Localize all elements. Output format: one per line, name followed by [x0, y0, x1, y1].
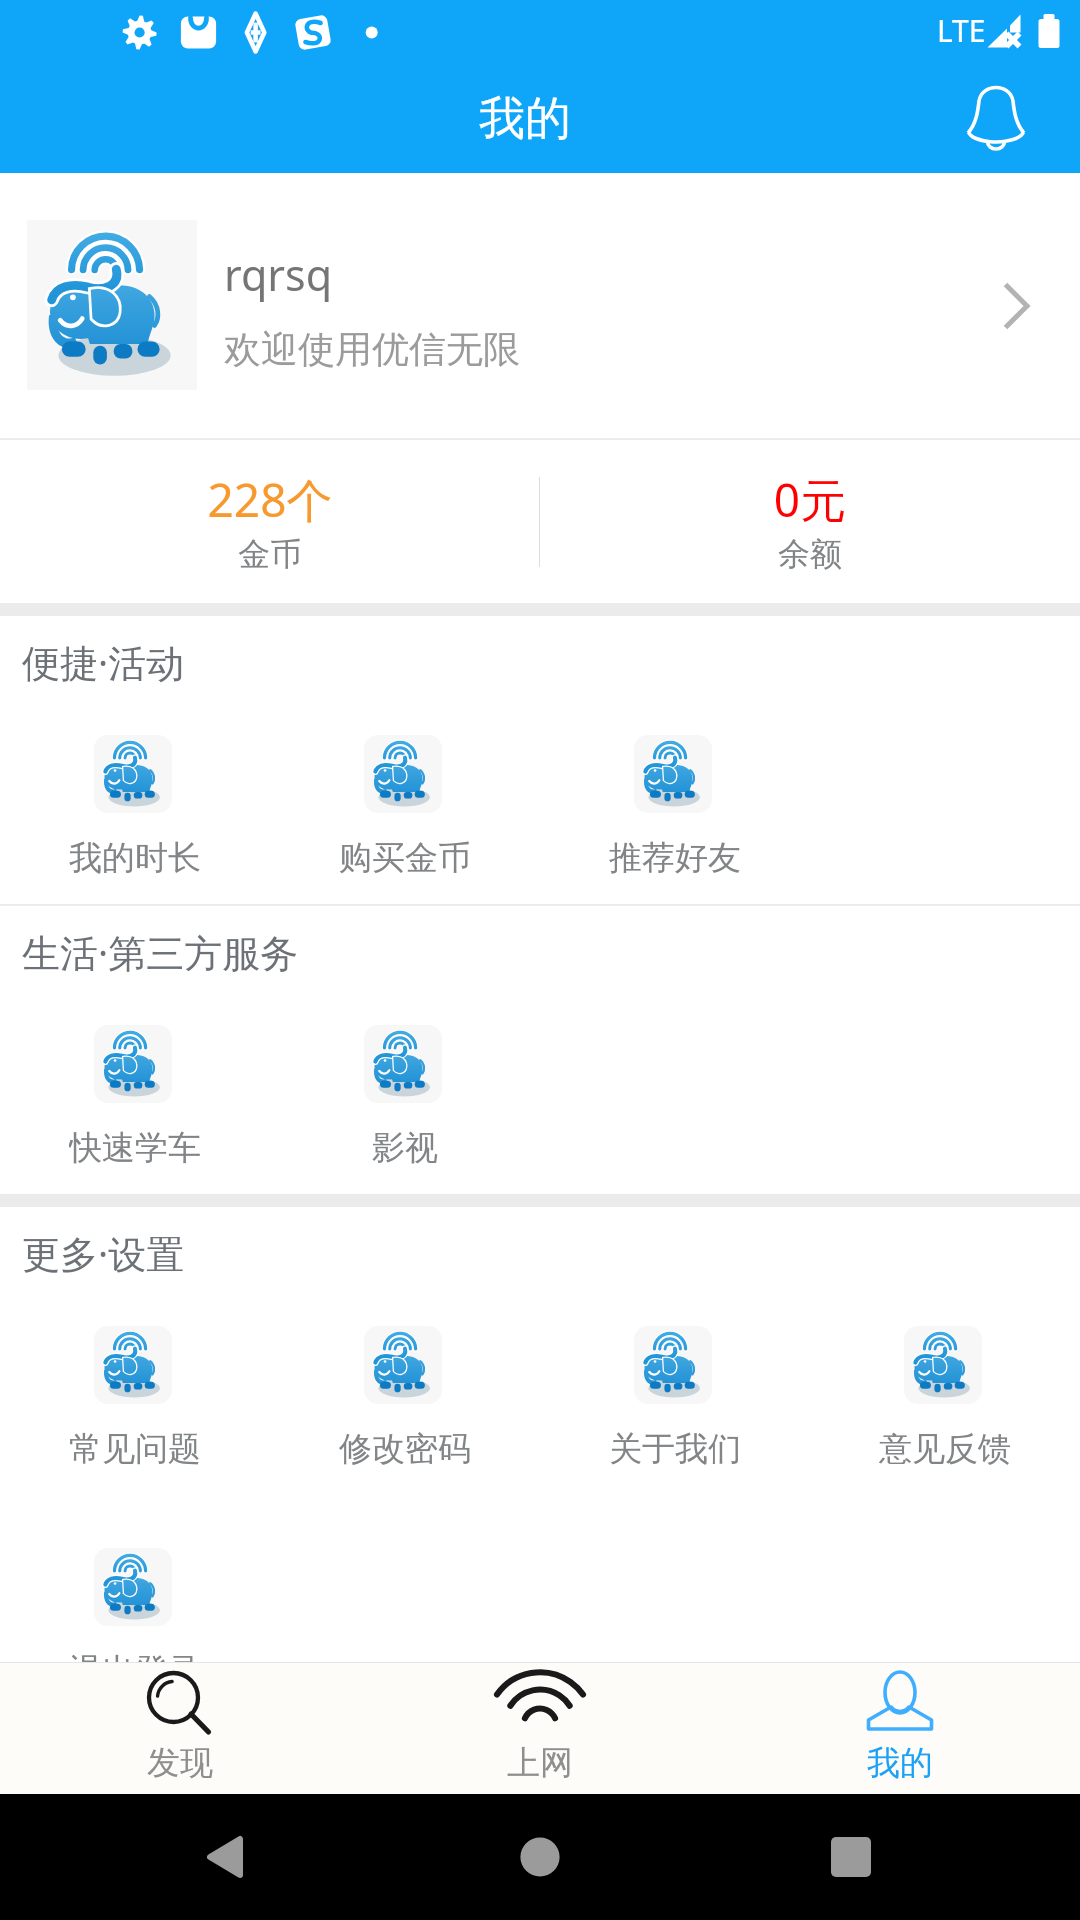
- staticText: 快速学车: [69, 1127, 201, 1166]
- button[interactable]: 快速学车: [0, 1025, 270, 1166]
- staticText: 退出登录: [69, 1650, 201, 1689]
- button[interactable]: 购买金币: [270, 735, 540, 876]
- staticText: 上网: [507, 1742, 573, 1784]
- staticText: 余额: [540, 534, 1080, 574]
- button[interactable]: Recent apps: [791, 1794, 911, 1920]
- staticText: 影视: [372, 1127, 438, 1166]
- button[interactable]: 退出登录: [0, 1548, 270, 1689]
- button[interactable]: 常见问题: [0, 1326, 270, 1467]
- button[interactable]: Back: [165, 1794, 285, 1920]
- staticText: 购买金币: [339, 837, 471, 876]
- staticText: 我的: [867, 1742, 933, 1784]
- staticText: 便捷·活动: [22, 636, 185, 688]
- staticText: 意见反馈: [879, 1428, 1011, 1467]
- staticText: rqrsq: [224, 245, 333, 304]
- staticText: 发现: [147, 1742, 213, 1784]
- button[interactable]: rqrsq: [0, 173, 1080, 438]
- button[interactable]: 我的时长: [0, 735, 270, 876]
- button[interactable]: 意见反馈: [810, 1326, 1080, 1467]
- staticText: 欢迎使用优信无限: [224, 326, 520, 373]
- button[interactable]: 228个: [0, 440, 540, 603]
- button[interactable]: 0元: [540, 440, 1080, 603]
- staticText: 金币: [0, 534, 540, 574]
- button[interactable]: Home: [480, 1794, 600, 1920]
- staticText: 推荐好友: [609, 837, 741, 876]
- button[interactable]: 关于我们: [540, 1326, 810, 1467]
- staticText: 生活·第三方服务: [22, 926, 299, 978]
- staticText: 228个: [0, 468, 540, 531]
- button[interactable]: 影视: [270, 1025, 540, 1166]
- button[interactable]: Notifications: [941, 57, 1051, 167]
- staticText: 我的时长: [69, 837, 201, 876]
- button[interactable]: 修改密码: [270, 1326, 540, 1467]
- staticText: 关于我们: [609, 1428, 741, 1467]
- button[interactable]: 发现: [0, 1663, 360, 1794]
- button[interactable]: 上网: [360, 1663, 720, 1794]
- button[interactable]: 我的: [720, 1663, 1080, 1794]
- button[interactable]: 推荐好友: [540, 735, 810, 876]
- staticText: 0元: [540, 468, 1080, 531]
- staticText: 更多·设置: [22, 1227, 185, 1279]
- staticText: 我的: [0, 90, 1065, 148]
- staticText: 修改密码: [339, 1428, 471, 1467]
- staticText: LTE: [937, 10, 986, 51]
- staticText: 常见问题: [69, 1428, 201, 1467]
